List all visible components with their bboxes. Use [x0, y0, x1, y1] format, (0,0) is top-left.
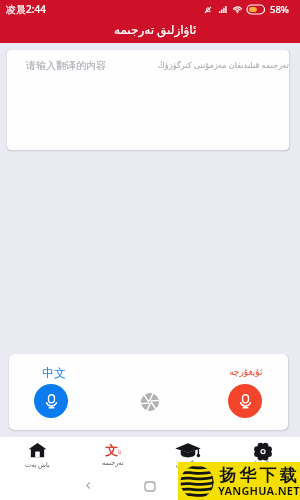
staticText: تەڭشەك — [251, 460, 275, 468]
staticText: تەرجىمە — [102, 459, 124, 467]
button[interactable]: ئۇيغۇرچە — [219, 363, 271, 421]
staticText: 扬华下载 — [219, 465, 300, 486]
button[interactable]: Home — [145, 482, 155, 491]
staticText: 58% — [270, 3, 289, 16]
staticText: 中文 — [42, 365, 66, 380]
staticText: 文 — [105, 442, 118, 457]
staticText: ئا — [118, 448, 122, 455]
button[interactable]: 文 — [75, 437, 150, 476]
button[interactable]: تەڭشەك — [225, 437, 300, 476]
staticText: 凌晨2:44 — [6, 2, 46, 16]
staticText: باش بەت — [25, 460, 50, 469]
button[interactable]: 请输入翻译的内容 — [7, 50, 289, 150]
staticText: ئۇيغۇرچە — [229, 367, 263, 377]
button[interactable]: ئۆگىنىش — [150, 437, 225, 476]
staticText: YANGHUA.NET — [218, 483, 300, 498]
button[interactable]: Swap languages — [139, 391, 161, 413]
staticText: ئاۋازلىق تەرجىمە — [114, 21, 197, 37]
staticText: ئۆگىنىش — [176, 460, 199, 468]
button[interactable]: 中文 — [25, 363, 77, 421]
button[interactable]: باش بەت — [0, 437, 75, 476]
staticText: تەرجىمە قىلىدىغان مەزمۇننى كىرگۈزۈڭ — [158, 59, 289, 70]
staticText: 请输入翻译的内容 — [26, 59, 106, 72]
button[interactable]: Back — [83, 480, 94, 491]
